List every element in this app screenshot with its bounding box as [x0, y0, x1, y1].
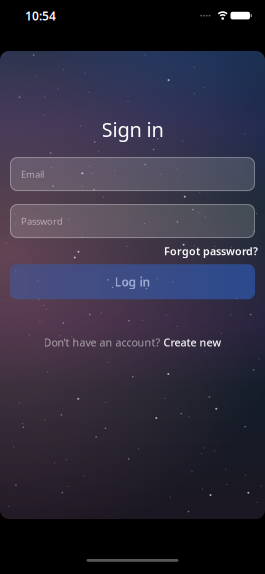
staticText: Sign in	[101, 116, 163, 143]
button[interactable]: Password	[10, 204, 255, 238]
button[interactable]: Email	[10, 157, 255, 191]
button[interactable]: Create new	[163, 335, 221, 349]
staticText: Create new	[163, 335, 221, 349]
staticText: Forgot password?	[164, 244, 258, 258]
staticText: Log in	[114, 274, 150, 290]
staticText: 10:54	[25, 8, 56, 24]
button[interactable]: Forgot password?	[164, 244, 258, 258]
staticText: Password	[21, 215, 63, 227]
staticText: Don't have an account?	[43, 335, 160, 349]
staticText: Email	[21, 168, 44, 180]
button[interactable]: Log in	[10, 264, 255, 299]
